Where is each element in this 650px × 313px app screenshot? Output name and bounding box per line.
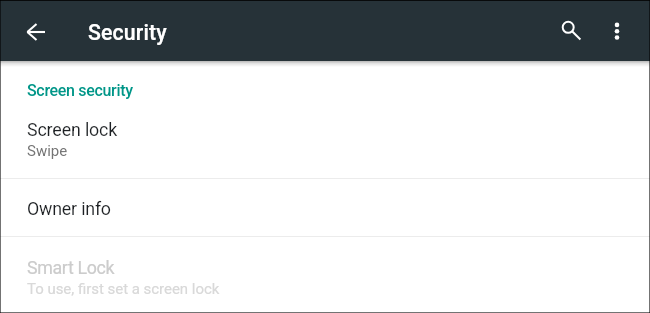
staticText: Security [88,20,167,45]
button[interactable]: Owner info [0,179,650,236]
staticText: Screen lock [27,119,118,140]
staticText: Screen security [27,81,133,100]
button[interactable]: Navigate up [13,9,59,55]
staticText: Owner info [27,198,111,219]
staticText: To use, first set a screen lock [27,280,220,298]
staticText: Smart Lock [27,257,115,278]
staticText: Swipe [27,142,68,160]
button[interactable]: Search [545,8,591,54]
button[interactable]: More options [594,8,640,54]
button[interactable]: Screen lock [0,102,650,178]
